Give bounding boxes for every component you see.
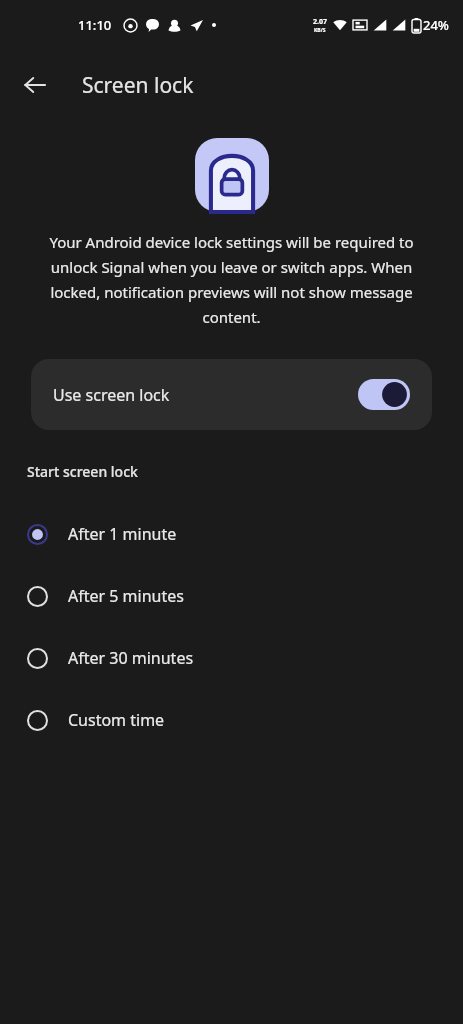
button[interactable]: After 5 minutes xyxy=(0,565,463,627)
staticText: Screen lock xyxy=(82,71,194,100)
button[interactable]: After 30 minutes xyxy=(0,627,463,689)
staticText: 24% xyxy=(423,16,449,34)
staticText: Use screen lock xyxy=(53,384,170,406)
staticText: Your Android device lock settings will b… xyxy=(34,232,429,327)
staticText: After 5 minutes xyxy=(68,585,184,607)
button[interactable]: Custom time xyxy=(0,689,463,751)
staticText: Custom time xyxy=(68,709,165,731)
staticText: After 30 minutes xyxy=(68,647,194,669)
staticText: 11:10 xyxy=(78,16,112,34)
button[interactable]: Back xyxy=(14,64,56,106)
staticText: 2.07 xyxy=(313,17,327,27)
staticText: After 1 minute xyxy=(68,523,177,545)
staticText: KB/S xyxy=(314,27,326,34)
button[interactable]: Use screen lock xyxy=(31,359,432,430)
button[interactable]: After 1 minute xyxy=(0,503,463,565)
staticText: Start screen lock xyxy=(27,462,138,481)
